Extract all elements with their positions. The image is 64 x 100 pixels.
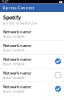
staticText: Secure network — [3, 76, 24, 80]
staticText: ▮▮▮ — [59, 0, 62, 3]
button[interactable]: Network name — [0, 82, 64, 95]
staticText: Network name — [3, 70, 31, 76]
staticText: Secure network — [3, 62, 24, 66]
staticText: Secure network — [3, 35, 24, 38]
staticText: Network name — [3, 84, 31, 89]
staticText: Secure network — [3, 90, 24, 93]
button[interactable]: Network name — [0, 68, 64, 82]
staticText: Network name — [3, 29, 31, 34]
button[interactable]: Network name — [0, 27, 64, 40]
button[interactable]: Network name — [0, 41, 64, 54]
staticText: Network name — [3, 43, 31, 48]
staticText: Join the network below — [3, 22, 37, 25]
staticText: Secure network — [3, 49, 24, 52]
staticText: Spotify — [3, 14, 21, 21]
staticText: Xpress Connect — [2, 5, 34, 10]
staticText: Network name — [3, 57, 31, 62]
staticText: 9:41 — [2, 0, 9, 3]
button[interactable]: Network name — [0, 55, 64, 68]
